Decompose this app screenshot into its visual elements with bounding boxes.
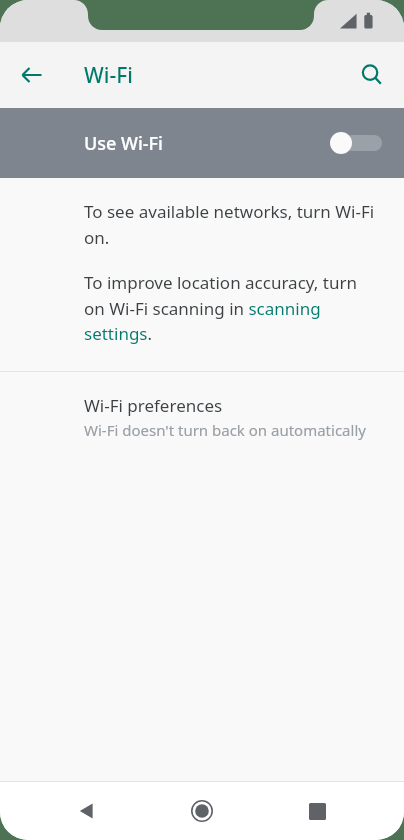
button[interactable]: Search (348, 51, 396, 99)
staticText: To see available networks, turn Wi-Fi on… (84, 200, 382, 249)
button[interactable]: To improve location accuracy, turn on Wi… (84, 271, 382, 345)
staticText: Wi-Fi preferences (84, 394, 223, 417)
button[interactable]: Back (8, 51, 56, 99)
staticText: Wi-Fi doesn't turn back on automatically (84, 420, 366, 440)
staticText: Wi-Fi (84, 61, 133, 90)
button[interactable]: Wi-Fi preferences (0, 372, 404, 460)
staticText: To improve location accuracy, turn on Wi… (84, 271, 382, 345)
button[interactable]: Back (59, 783, 115, 839)
staticText: Use Wi-Fi (84, 131, 330, 156)
button[interactable]: Use Wi-Fi (0, 108, 404, 178)
button[interactable]: Home (174, 783, 230, 839)
button[interactable]: Recent apps (289, 783, 345, 839)
